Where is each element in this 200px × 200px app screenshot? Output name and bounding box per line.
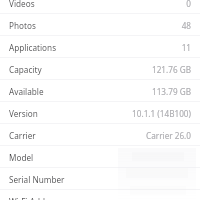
button[interactable]: Wi-Fi Address xyxy=(0,190,200,200)
staticText: 0 xyxy=(186,0,191,9)
staticText: Photos xyxy=(9,20,36,31)
staticText: Version xyxy=(9,108,38,119)
button[interactable]: Applications xyxy=(0,36,200,58)
staticText: 113.79 GB xyxy=(151,86,191,97)
staticText: Carrier 26.0 xyxy=(145,130,191,141)
staticText: 121.76 GB xyxy=(151,64,191,75)
button[interactable]: Model xyxy=(0,146,200,168)
button[interactable]: Videos xyxy=(0,0,200,14)
button[interactable]: Photos xyxy=(0,14,200,36)
staticText: Serial Number xyxy=(9,174,65,185)
button[interactable]: Available xyxy=(0,80,200,102)
staticText: Applications xyxy=(9,42,57,53)
staticText: 48 xyxy=(181,20,191,31)
button[interactable]: Serial Number xyxy=(0,168,200,190)
staticText: Wi-Fi Address xyxy=(9,196,61,200)
staticText: Carrier xyxy=(9,130,36,141)
staticText: Capacity xyxy=(9,64,42,75)
button[interactable]: Carrier xyxy=(0,124,200,146)
staticText: Model xyxy=(9,152,34,163)
button[interactable]: Capacity xyxy=(0,58,200,80)
staticText: 11 xyxy=(181,42,191,53)
staticText: 10.1.1 (14B100) xyxy=(132,108,191,119)
staticText: Videos xyxy=(9,0,35,9)
staticText: Available xyxy=(9,86,44,97)
button[interactable]: Version xyxy=(0,102,200,124)
